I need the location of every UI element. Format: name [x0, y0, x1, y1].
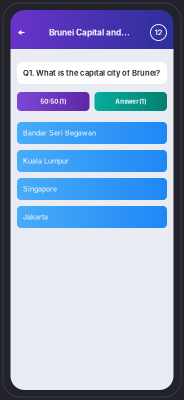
staticText: 50:50 (1) — [40, 98, 66, 105]
staticText: Brunei Capital and... — [49, 27, 130, 37]
staticText: 12 — [154, 28, 162, 37]
staticText: Answer (1) — [115, 98, 146, 105]
button[interactable]: 50:50 (1) — [17, 92, 89, 111]
staticText: Q1. What is the capital city of Brunei? — [23, 68, 160, 78]
button[interactable]: Answer (1) — [94, 92, 167, 111]
button[interactable]: Jakarta — [17, 206, 167, 228]
button[interactable]: Question 12 of 12 — [150, 24, 166, 40]
button[interactable]: Singapore — [17, 178, 167, 200]
staticText: Jakarta — [23, 213, 48, 221]
button[interactable]: Kuala Lumpur — [17, 150, 167, 172]
button[interactable]: Back — [14, 26, 28, 39]
staticText: Bandar Seri Begawan — [23, 129, 96, 137]
button[interactable]: Bandar Seri Begawan — [17, 122, 167, 144]
staticText: Kuala Lumpur — [23, 157, 69, 165]
staticText: Singapore — [23, 185, 57, 193]
